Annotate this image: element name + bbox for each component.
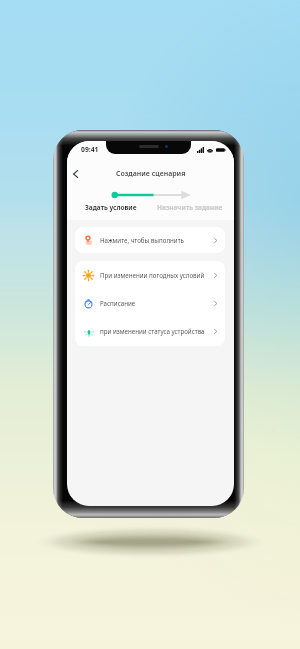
button[interactable]: Расписание [75,289,225,317]
button[interactable]: при изменении статуса устройства [75,317,225,345]
staticText: при изменении статуса устройства [100,327,205,335]
staticText: Расписание [100,299,136,307]
staticText: 09:41 [81,145,99,154]
staticText: Задать условие [85,203,137,212]
button[interactable]: При изменении погодных условий [75,261,225,289]
staticText: Нажмите, чтобы выполнить [100,236,184,244]
staticText: При изменении погодных условий [100,271,205,279]
button[interactable]: Нажмите, чтобы выполнить [75,227,225,253]
staticText: Создание сценария [116,169,186,179]
staticText: Назначить задание [157,203,223,212]
button[interactable]: Back [67,165,84,183]
